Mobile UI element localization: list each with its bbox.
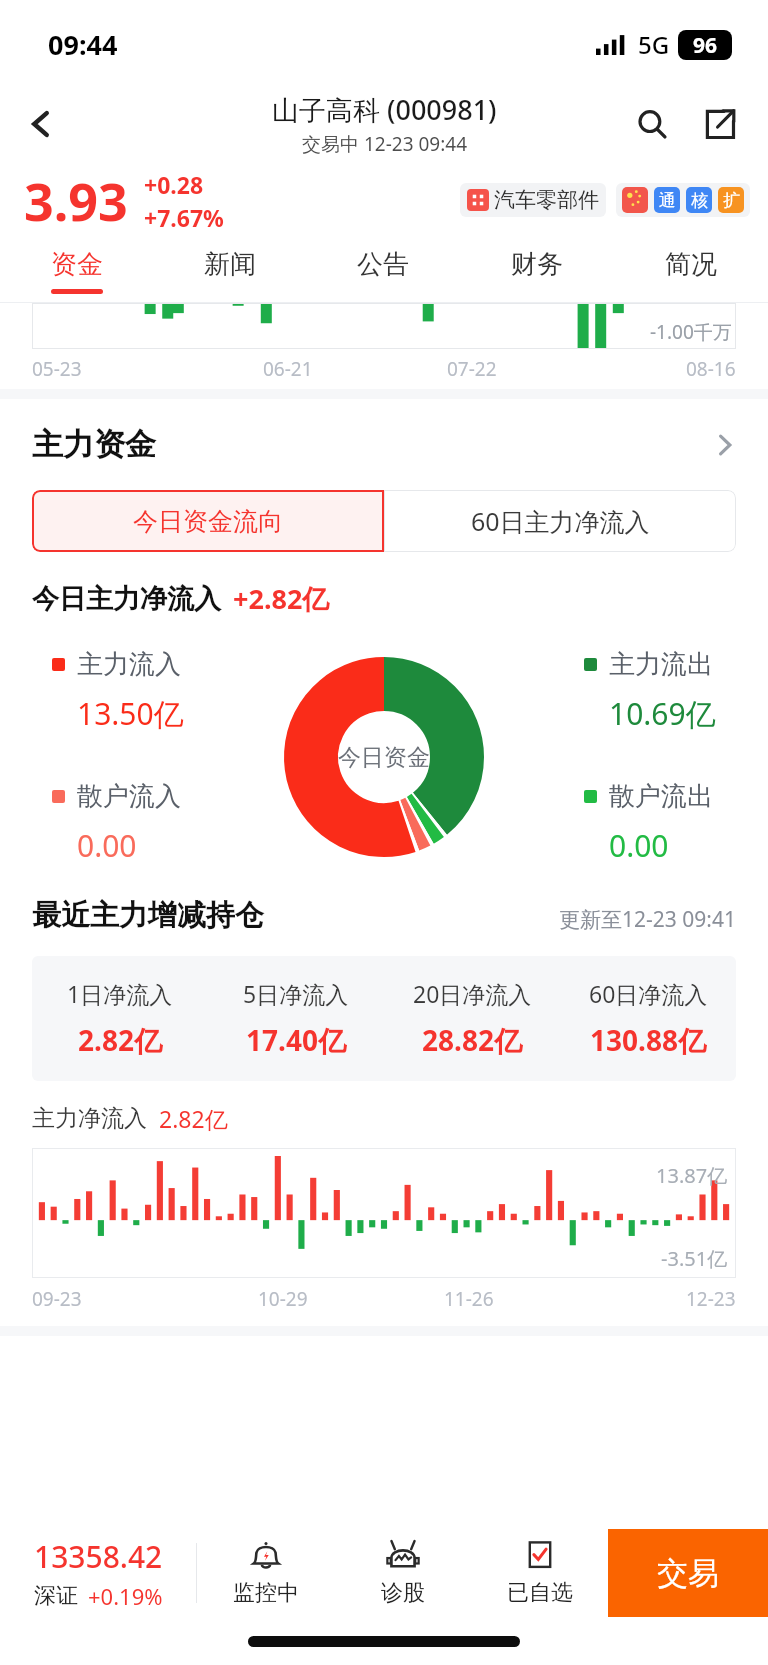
staticText: 已自选 <box>507 1579 573 1607</box>
staticText: 新闻 <box>204 248 256 281</box>
staticText: 通 <box>659 190 676 211</box>
staticText: 诊股 <box>381 1579 425 1607</box>
staticText: 交易 <box>657 1554 719 1593</box>
staticText: 核 <box>691 190 708 211</box>
button[interactable]: 交易 <box>608 1529 768 1617</box>
staticText: 06-21 <box>263 356 313 382</box>
staticText: 简况 <box>665 248 717 281</box>
staticText: -3.51亿 <box>661 1245 728 1272</box>
staticText: 13358.42 <box>34 1536 163 1577</box>
button[interactable]: 扩 <box>718 187 744 213</box>
staticText: 财务 <box>511 248 563 281</box>
staticText: 09-23 <box>32 1286 82 1312</box>
button[interactable]: 财务 <box>460 240 614 302</box>
staticText: 96 <box>693 31 718 60</box>
staticText: 散户流入 <box>77 780 181 813</box>
staticText: 3.93 <box>24 165 128 236</box>
staticText: 最近主力增减持仓 <box>32 897 264 934</box>
staticText: 今日资金 <box>338 743 430 772</box>
staticText: 深证 <box>34 1582 78 1610</box>
staticText: 60日主力净流入 <box>471 504 650 538</box>
staticText: 交易中 12-23 09:44 <box>302 131 468 157</box>
staticText: 5日净流入 <box>243 978 349 1009</box>
staticText: 扩 <box>723 190 740 211</box>
staticText: 资金 <box>51 248 103 281</box>
staticText: 60日净流入 <box>589 978 708 1009</box>
staticText: +2.82亿 <box>233 580 330 617</box>
staticText: 山子高科 (000981) <box>272 91 497 128</box>
staticText: 1日净流入 <box>67 978 173 1009</box>
button[interactable]: 监控中 <box>197 1529 334 1617</box>
staticText: +7.67% <box>144 202 224 233</box>
staticText: 08-16 <box>686 356 736 382</box>
staticText: 公告 <box>357 248 409 281</box>
button[interactable]: Back <box>14 97 68 151</box>
staticText: 13.87亿 <box>656 1162 728 1189</box>
button[interactable]: 核 <box>686 187 712 213</box>
staticText: 汽车零部件 <box>494 187 599 213</box>
staticText: 今日资金流向 <box>133 506 283 537</box>
staticText: 0.00 <box>609 825 669 866</box>
staticText: 0.00 <box>77 825 137 866</box>
staticText: 130.88亿 <box>590 1021 706 1059</box>
button[interactable]: 主力资金 <box>32 425 736 464</box>
staticText: 07-22 <box>447 356 497 382</box>
staticText: 主力资金 <box>32 425 156 464</box>
button[interactable]: 60日主力净流入 <box>384 490 736 552</box>
button[interactable]: 简况 <box>614 240 768 302</box>
button[interactable]: Share <box>692 96 748 152</box>
staticText: 2.82亿 <box>159 1103 228 1134</box>
staticText: 2.82亿 <box>78 1021 162 1059</box>
button[interactable]: 新闻 <box>153 240 306 302</box>
staticText: -1.00千万 <box>650 319 732 345</box>
button[interactable]: 公告 <box>306 240 460 302</box>
button[interactable]: 13358.42 <box>0 1529 196 1617</box>
button[interactable] <box>622 187 648 213</box>
button[interactable]: 诊股 <box>334 1529 471 1617</box>
staticText: 主力净流入 <box>32 1104 147 1133</box>
button[interactable]: 资金 <box>0 240 153 302</box>
button[interactable]: Search <box>624 96 680 152</box>
staticText: 散户流出 <box>609 780 713 813</box>
staticText: 10-29 <box>258 1286 308 1312</box>
staticText: 更新至12-23 09:41 <box>559 905 736 934</box>
staticText: 主力流出 <box>609 648 713 681</box>
button[interactable]: 已自选 <box>471 1529 608 1617</box>
staticText: 17.40亿 <box>246 1021 346 1059</box>
button[interactable]: 汽车零部件 <box>467 187 599 213</box>
staticText: 今日主力净流入 <box>32 582 221 616</box>
button[interactable]: 通 <box>654 187 680 213</box>
staticText: 12-23 <box>686 1286 736 1312</box>
staticText: +0.28 <box>144 169 204 200</box>
staticText: 20日净流入 <box>413 978 532 1009</box>
button[interactable]: 今日资金流向 <box>32 490 384 552</box>
staticText: 28.82亿 <box>422 1021 522 1059</box>
staticText: 05-23 <box>32 356 82 382</box>
staticText: 13.50亿 <box>77 693 184 734</box>
staticText: 5G <box>638 28 670 61</box>
staticText: 10.69亿 <box>609 693 716 734</box>
staticText: +0.19% <box>88 1581 163 1611</box>
staticText: 主力流入 <box>77 648 181 681</box>
staticText: 09:44 <box>48 26 118 63</box>
staticText: 11-26 <box>444 1286 494 1312</box>
staticText: 监控中 <box>233 1579 299 1607</box>
